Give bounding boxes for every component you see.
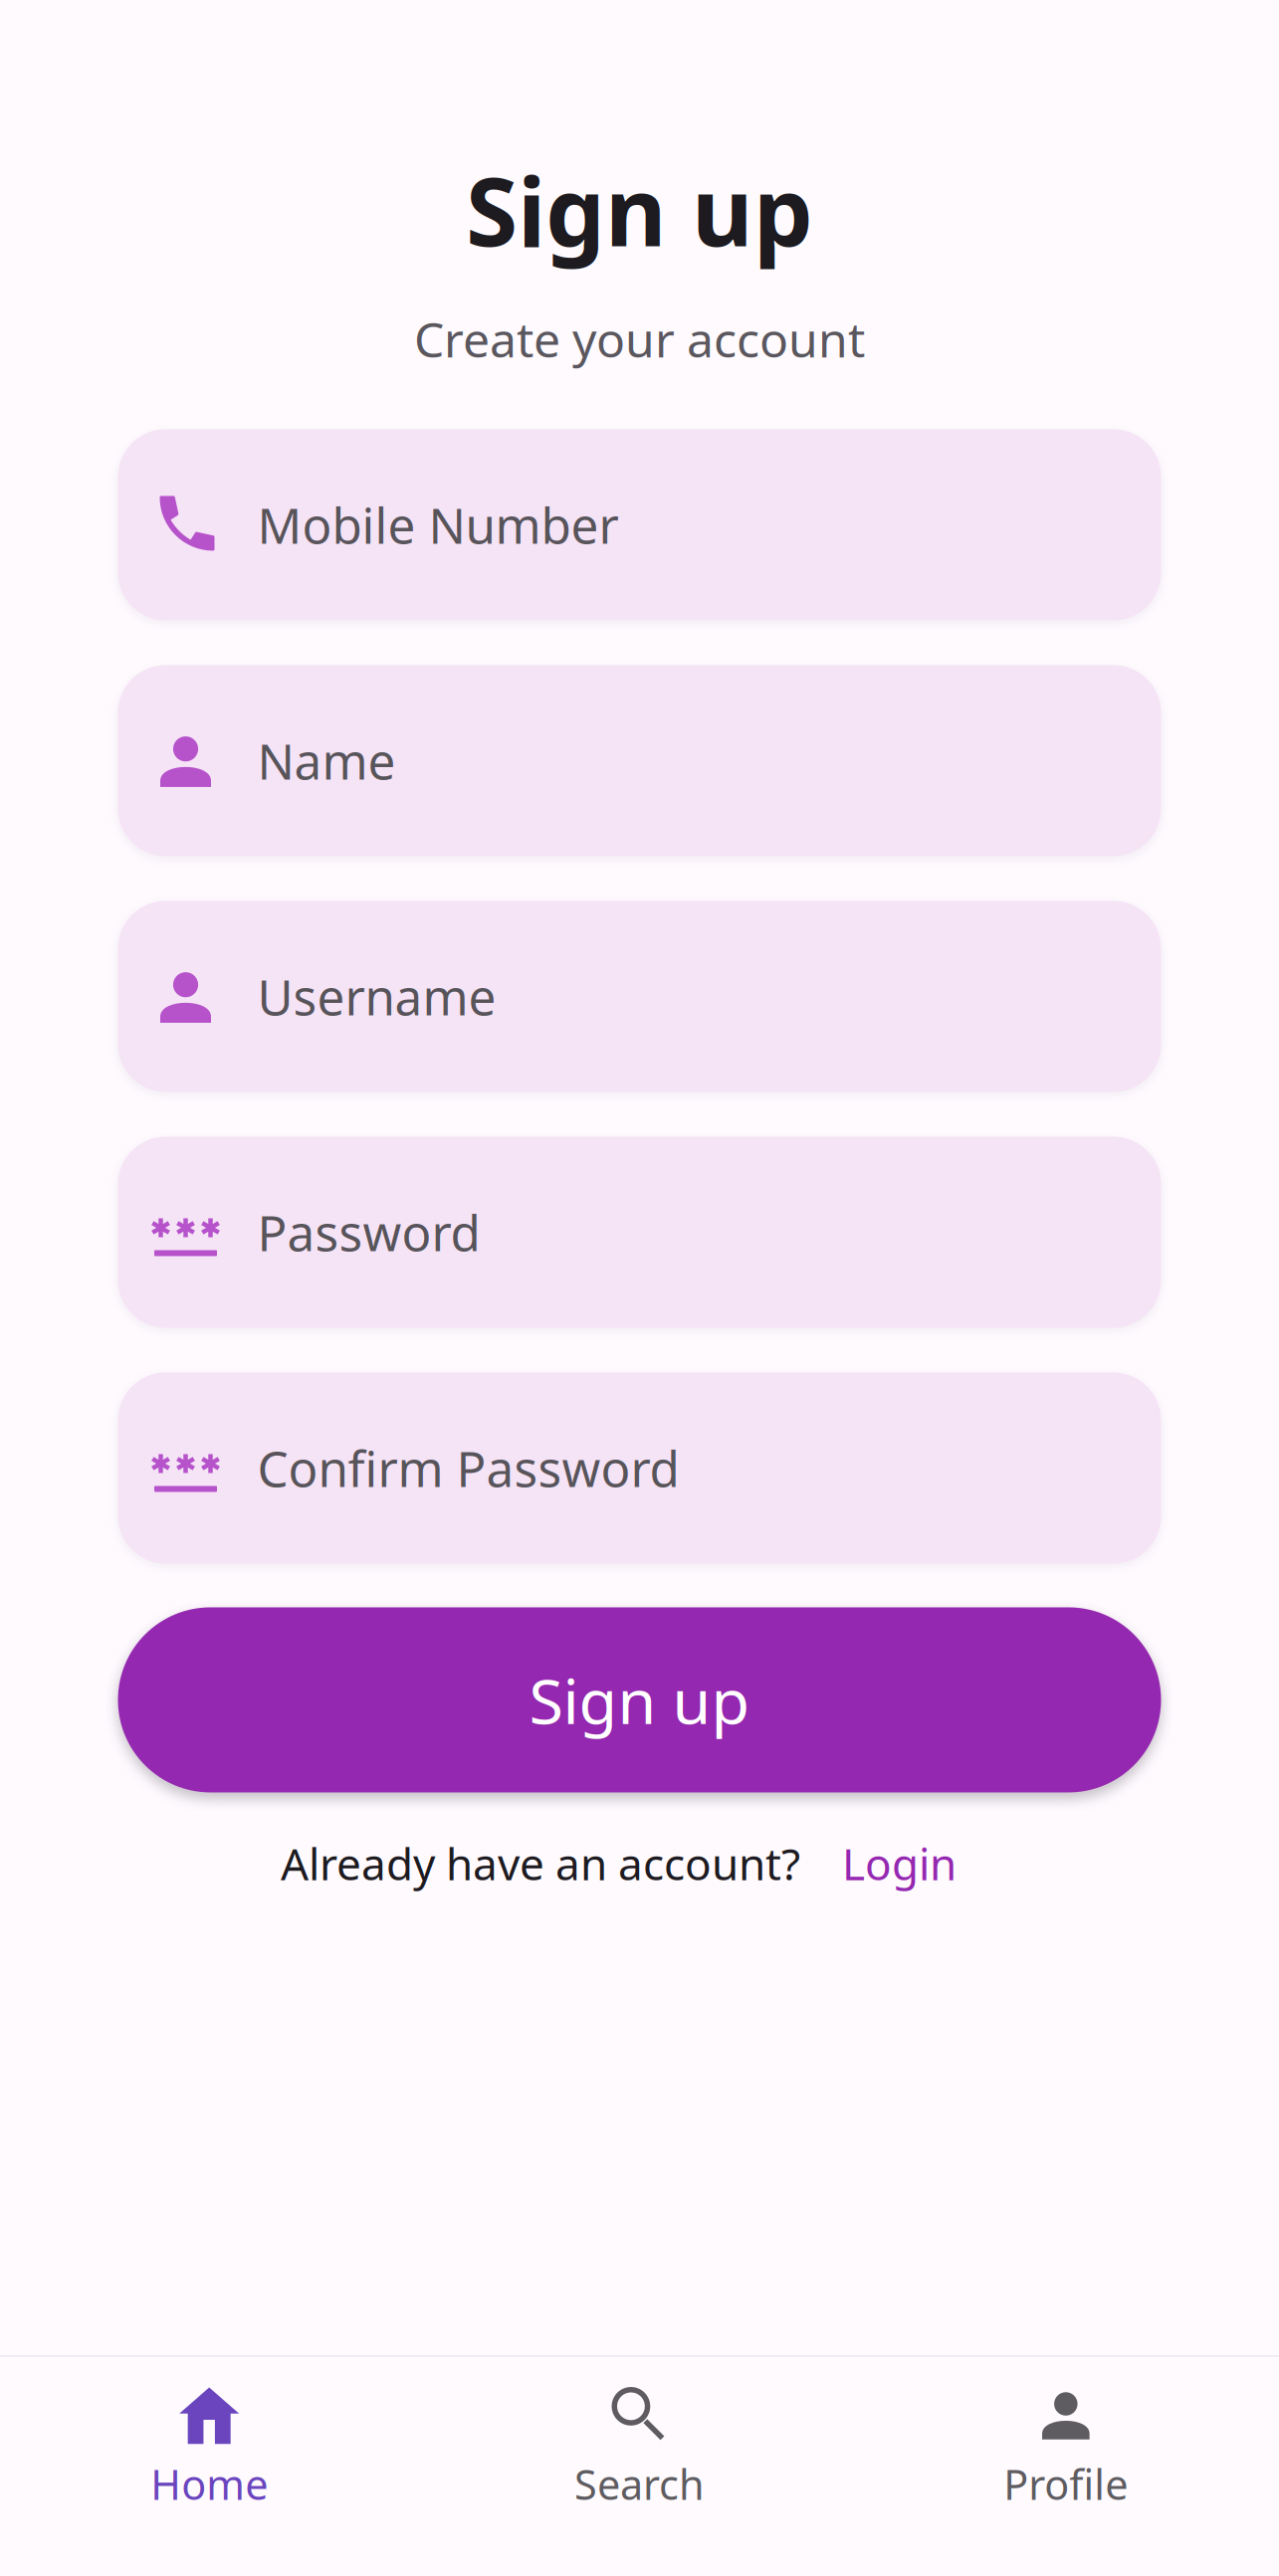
button[interactable]: Sign up [118,1607,1161,1792]
button[interactable]: Confirm Password [118,1373,1161,1564]
staticText: Username [257,964,496,1029]
button[interactable]: Name [118,665,1161,856]
button[interactable]: Search [426,2357,853,2542]
button[interactable]: Login [800,1834,957,1892]
button[interactable]: Mobile Number [118,429,1161,620]
button[interactable]: Home [0,2357,422,2542]
staticText: Login [842,1834,957,1892]
staticText: Search [574,2457,705,2511]
staticText: Sign up [466,147,813,272]
staticText: Already have an account? [281,1834,800,1892]
button[interactable]: Password [118,1137,1161,1328]
staticText: Sign up [529,1658,750,1741]
staticText: Mobile Number [257,492,619,557]
staticText: Home [150,2457,268,2511]
staticText: Confirm Password [257,1435,679,1501]
staticText: Name [257,728,396,793]
button[interactable]: Profile [853,2357,1279,2542]
button[interactable]: Username [118,901,1161,1092]
staticText: Password [257,1200,480,1265]
staticText: Profile [1004,2457,1128,2511]
staticText: Create your account [414,307,865,371]
